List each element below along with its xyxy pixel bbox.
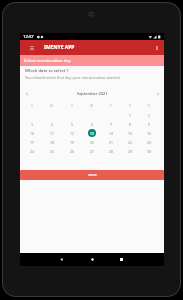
staticText: 12 bbox=[70, 131, 74, 136]
staticText: 12:57 bbox=[23, 34, 34, 40]
staticText: September 2021 bbox=[77, 91, 108, 96]
staticText: S bbox=[31, 103, 33, 108]
button[interactable]: 26 bbox=[68, 147, 76, 155]
staticText: 11 bbox=[50, 131, 54, 136]
button[interactable]: 2 bbox=[145, 111, 153, 119]
button[interactable]: Next month bbox=[151, 88, 164, 99]
staticText: 8 bbox=[129, 122, 131, 127]
staticText: 1 bbox=[129, 113, 131, 118]
staticText: 24 bbox=[30, 149, 34, 154]
staticText: 3 bbox=[31, 122, 33, 127]
staticText: 20 bbox=[90, 140, 94, 145]
button[interactable]: 13 bbox=[88, 129, 96, 137]
button[interactable]: 17 bbox=[28, 138, 36, 146]
button[interactable]: 1 bbox=[126, 111, 134, 119]
staticText: 25 bbox=[50, 149, 54, 154]
staticText: 15 bbox=[128, 131, 132, 136]
staticText: F bbox=[129, 103, 131, 108]
button[interactable]: More options bbox=[152, 43, 161, 52]
staticText: 17 bbox=[30, 140, 34, 145]
button[interactable]: save bbox=[20, 170, 164, 180]
button[interactable]: 6 bbox=[88, 120, 96, 128]
button[interactable]: 10 bbox=[28, 129, 36, 137]
button[interactable]: 21 bbox=[107, 138, 115, 146]
button[interactable]: Previous month bbox=[20, 88, 33, 99]
staticText: T bbox=[110, 103, 112, 108]
staticText: 2 bbox=[148, 113, 150, 118]
button[interactable]: 29 bbox=[126, 147, 134, 155]
staticText: 23 bbox=[147, 140, 151, 145]
staticText: 30 bbox=[147, 149, 151, 154]
button[interactable]: 24 bbox=[28, 147, 36, 155]
staticText: 29 bbox=[128, 149, 132, 154]
staticText: 5 bbox=[71, 122, 73, 127]
button[interactable]: Menu bbox=[28, 44, 36, 52]
staticText: 26 bbox=[70, 149, 74, 154]
button[interactable]: 25 bbox=[48, 147, 56, 155]
button[interactable]: 15 bbox=[126, 129, 134, 137]
button[interactable]: 23 bbox=[145, 138, 153, 146]
staticText: 22 bbox=[128, 140, 132, 145]
button[interactable]: 19 bbox=[68, 138, 76, 146]
staticText: save bbox=[88, 172, 97, 178]
button[interactable]: 28 bbox=[107, 147, 115, 155]
button[interactable]: 12 bbox=[68, 129, 76, 137]
button[interactable]: Recents bbox=[114, 253, 128, 266]
staticText: 27 bbox=[90, 149, 94, 154]
button[interactable]: 9 bbox=[145, 120, 153, 128]
staticText: 13 bbox=[90, 131, 94, 136]
staticText: Which date to select ? bbox=[25, 68, 69, 74]
staticText: Select menstruation day bbox=[24, 58, 71, 64]
button[interactable]: Home bbox=[85, 253, 99, 266]
staticText: S bbox=[148, 103, 150, 108]
button[interactable]: 27 bbox=[88, 147, 96, 155]
button[interactable]: 3 bbox=[28, 120, 36, 128]
button[interactable]: 14 bbox=[107, 129, 115, 137]
button[interactable]: 5 bbox=[68, 120, 76, 128]
button[interactable]: 11 bbox=[48, 129, 56, 137]
button[interactable]: 8 bbox=[126, 120, 134, 128]
staticText: 18 bbox=[50, 140, 54, 145]
staticText: 19 bbox=[70, 140, 74, 145]
staticText: 28 bbox=[109, 149, 113, 154]
staticText: W bbox=[90, 103, 94, 108]
button[interactable]: Back bbox=[54, 253, 68, 266]
button[interactable]: 7 bbox=[107, 120, 115, 128]
staticText: M bbox=[50, 103, 54, 108]
button[interactable]: 18 bbox=[48, 138, 56, 146]
staticText: T bbox=[71, 103, 73, 108]
staticText: 4 bbox=[51, 122, 53, 127]
button[interactable]: 30 bbox=[145, 147, 153, 155]
button[interactable]: 20 bbox=[88, 138, 96, 146]
staticText: 7 bbox=[110, 122, 112, 127]
button[interactable]: 16 bbox=[145, 129, 153, 137]
staticText: 21 bbox=[109, 140, 113, 145]
staticText: 6 bbox=[91, 122, 93, 127]
button[interactable]: 4 bbox=[48, 120, 56, 128]
staticText: 14 bbox=[109, 131, 113, 136]
staticText: IMENYE APP bbox=[44, 44, 75, 51]
staticText: You should select first day your menstru… bbox=[25, 75, 120, 80]
button[interactable]: 22 bbox=[126, 138, 134, 146]
staticText: 10 bbox=[30, 131, 34, 136]
staticText: 16 bbox=[147, 131, 151, 136]
staticText: 9 bbox=[148, 122, 150, 127]
